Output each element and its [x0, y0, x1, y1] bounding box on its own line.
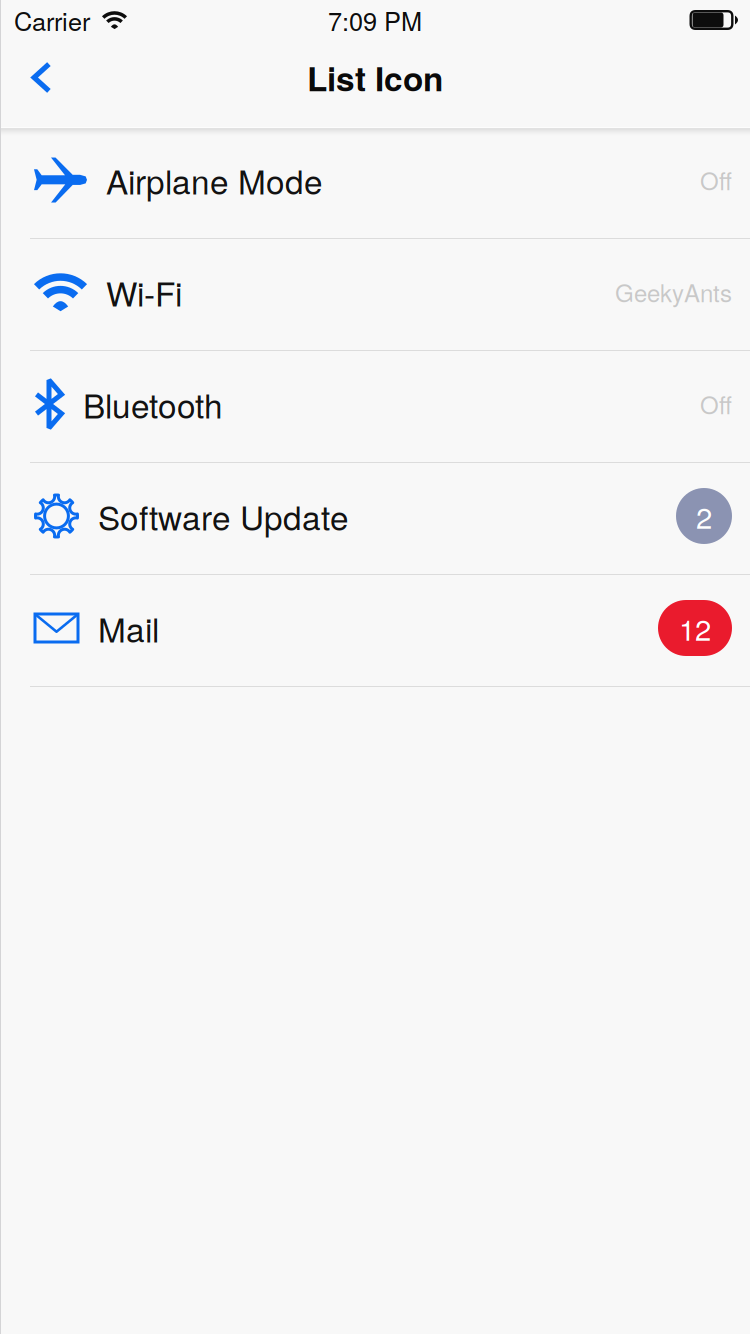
- button[interactable]: Wi-Fi: [0, 239, 750, 351]
- staticText: GeekyAnts: [615, 275, 732, 309]
- staticText: Bluetooth: [83, 380, 223, 428]
- button[interactable]: Software Update: [0, 463, 750, 575]
- staticText: 7:09 PM: [328, 2, 422, 38]
- staticText: 12: [679, 607, 711, 649]
- staticText: Airplane Mode: [106, 156, 323, 204]
- staticText: Mail: [98, 604, 159, 652]
- button[interactable]: Bluetooth: [0, 351, 750, 463]
- staticText: Wi-Fi: [106, 268, 182, 316]
- button[interactable]: Back: [10, 40, 73, 115]
- staticText: 2: [696, 495, 712, 537]
- staticText: Carrier: [14, 2, 90, 38]
- button[interactable]: Airplane Mode: [0, 127, 750, 239]
- staticText: List Icon: [307, 54, 443, 101]
- staticText: Off: [700, 163, 732, 197]
- staticText: Off: [700, 387, 732, 421]
- button[interactable]: Mail: [0, 575, 750, 687]
- staticText: Software Update: [98, 492, 349, 540]
